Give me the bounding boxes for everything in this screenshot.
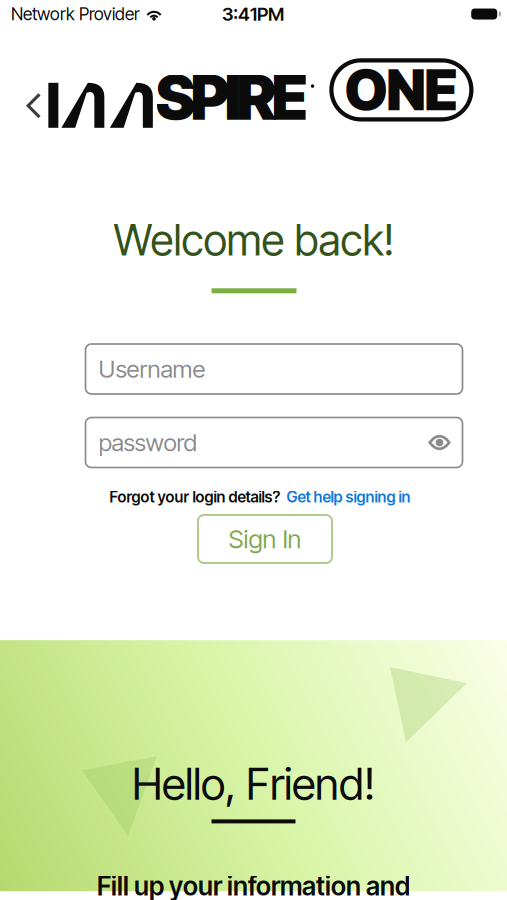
staticText: ONE [344,56,458,124]
staticText: SPIRE [156,61,308,134]
staticText: Get help signing in [286,488,410,506]
staticText: password [98,428,196,457]
staticText: Sign In [228,524,301,554]
button[interactable]: Back [18,85,49,127]
staticText: 3:41PM [222,3,284,25]
staticText: Fill up your information and [97,870,410,900]
staticText: Welcome back! [113,214,394,266]
staticText: Hello, Friend! [132,757,375,810]
staticText: Network Provider [11,3,140,24]
button[interactable]: Show password [428,433,450,451]
button[interactable]: Sign In [198,515,332,563]
staticText: Forgot your login details? [109,488,280,506]
button[interactable]: Get help signing in [286,488,410,506]
staticText: Username [98,354,205,383]
